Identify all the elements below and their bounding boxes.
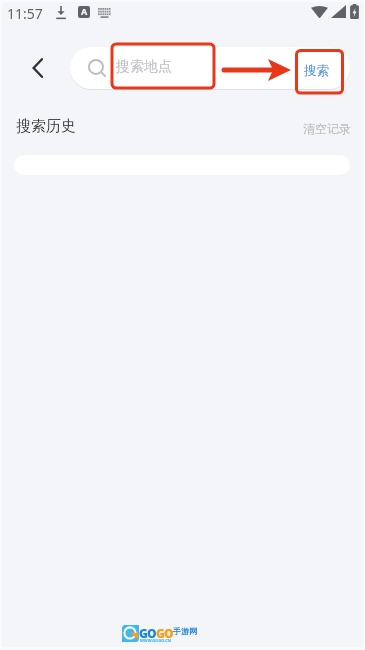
staticText: 搜索地点 bbox=[116, 58, 172, 76]
button[interactable]: 搜索地点 bbox=[70, 47, 286, 89]
staticText: A bbox=[81, 6, 88, 17]
staticText: 手游网 bbox=[173, 626, 197, 636]
staticText: 搜索历史 bbox=[16, 117, 76, 136]
staticText: 清空记录 bbox=[303, 121, 351, 136]
button[interactable]: 清空记录 bbox=[299, 117, 355, 140]
staticText: GO bbox=[156, 625, 173, 641]
staticText: GO bbox=[139, 625, 156, 641]
staticText: 11:57 bbox=[7, 4, 43, 23]
button[interactable]: 搜索 bbox=[296, 50, 343, 93]
staticText: 搜索 bbox=[304, 63, 329, 79]
staticText: WWW.GOGO.CN bbox=[140, 638, 172, 643]
button[interactable]: Back bbox=[24, 54, 52, 82]
